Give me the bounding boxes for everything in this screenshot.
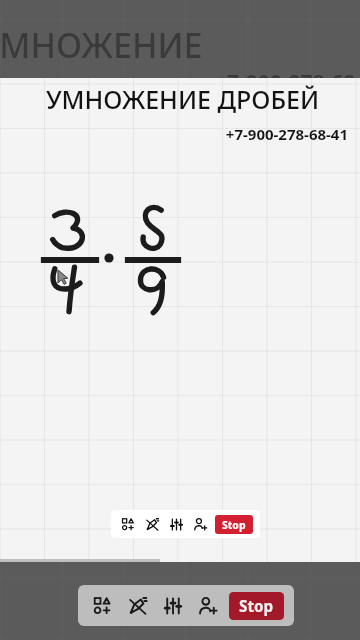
button[interactable]: Insert shape xyxy=(88,591,117,620)
button[interactable]: Stop xyxy=(215,515,253,534)
button[interactable]: Settings xyxy=(158,591,187,620)
button[interactable]: Add participant xyxy=(190,514,210,534)
staticText: УМНОЖЕНИЕ ДРОБЕЙ xyxy=(10,82,355,116)
button[interactable]: Add participant xyxy=(193,591,222,620)
button[interactable]: Stop xyxy=(229,592,284,620)
staticText: +7-900-278-68-41 xyxy=(215,68,360,97)
staticText: УМНОЖЕНИЕ ДРОБЕЙ xyxy=(0,22,338,68)
staticText: Stop xyxy=(239,596,274,617)
staticText: Stop xyxy=(222,518,246,532)
button[interactable]: Settings xyxy=(166,514,186,534)
button[interactable]: Toggle pen xyxy=(123,591,152,620)
button[interactable]: Insert shape xyxy=(118,514,138,534)
button[interactable]: Toggle pen xyxy=(142,514,162,534)
staticText: +7-900-278-68-41 xyxy=(0,124,348,144)
